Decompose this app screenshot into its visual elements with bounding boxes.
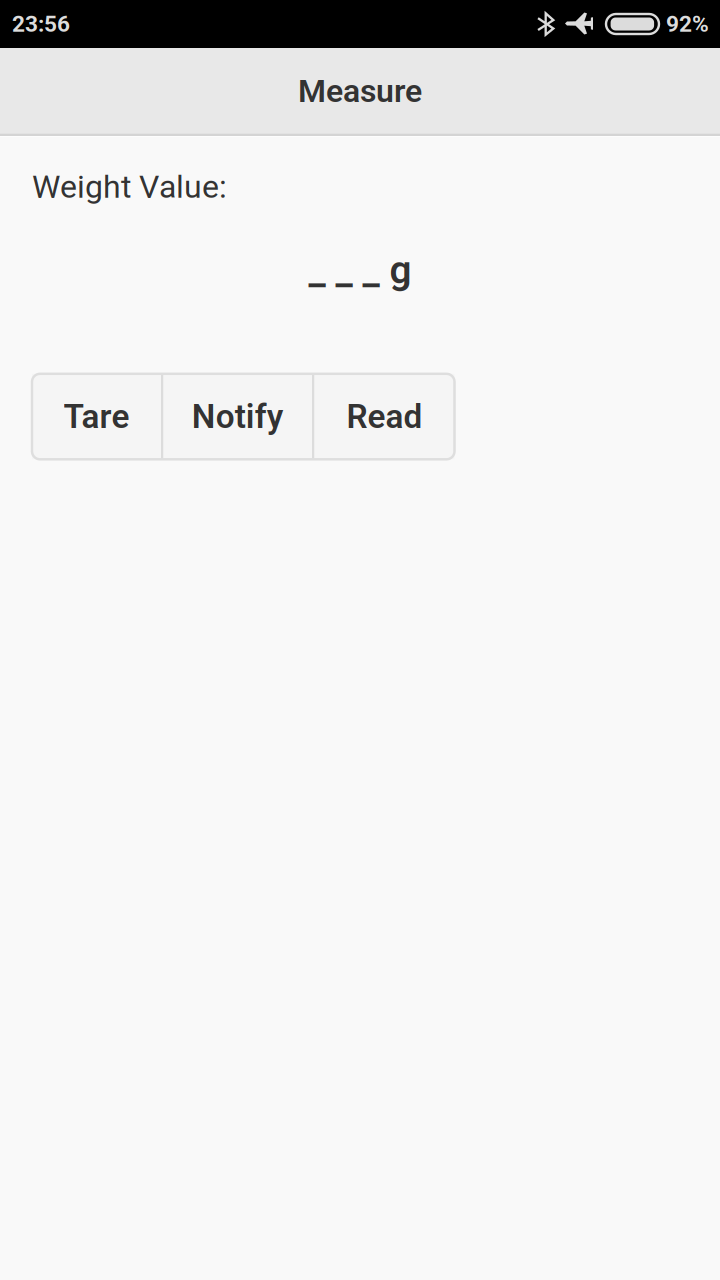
staticText: 23:56 [12, 11, 70, 37]
staticText: _ _ _ g [308, 247, 411, 293]
staticText: Weight Value: [32, 168, 227, 205]
staticText: Read [346, 397, 422, 436]
button[interactable]: Notify [163, 374, 312, 459]
staticText: Tare [63, 397, 129, 436]
staticText: 92% [666, 11, 709, 37]
staticText: Notify [192, 397, 284, 436]
staticText: Measure [298, 72, 422, 110]
button[interactable]: Read [314, 374, 454, 459]
button[interactable]: Tare [32, 374, 161, 459]
